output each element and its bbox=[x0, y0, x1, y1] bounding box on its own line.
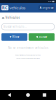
staticText: Ingresar bbox=[42, 6, 53, 9]
button[interactable]: RC bbox=[0, 5, 25, 10]
staticText: reservados - Aviso de privacidad bbox=[16, 57, 40, 59]
staticText: Buscar vehiculo... bbox=[3, 25, 27, 28]
button[interactable]: Home bbox=[23, 90, 33, 100]
staticText: Copyright 2024 - Todos los derechos bbox=[15, 54, 41, 56]
staticText: Vehiculos bbox=[5, 16, 19, 19]
staticText: Filtrar bbox=[12, 35, 19, 39]
staticText: vehiculos bbox=[9, 5, 25, 10]
button[interactable]: Ingresar bbox=[38, 5, 56, 10]
button[interactable]: Buscar bbox=[29, 33, 55, 41]
staticText: No se encontraron vehiculos bbox=[8, 46, 48, 50]
button[interactable]: Filtrar bbox=[1, 33, 27, 41]
button[interactable]: Back bbox=[6, 90, 16, 100]
button[interactable]: Buscar vehiculo... bbox=[0, 23, 56, 30]
button[interactable]: Recents bbox=[39, 90, 49, 100]
staticText: Buscar bbox=[39, 35, 47, 39]
staticText: RC bbox=[2, 5, 8, 10]
